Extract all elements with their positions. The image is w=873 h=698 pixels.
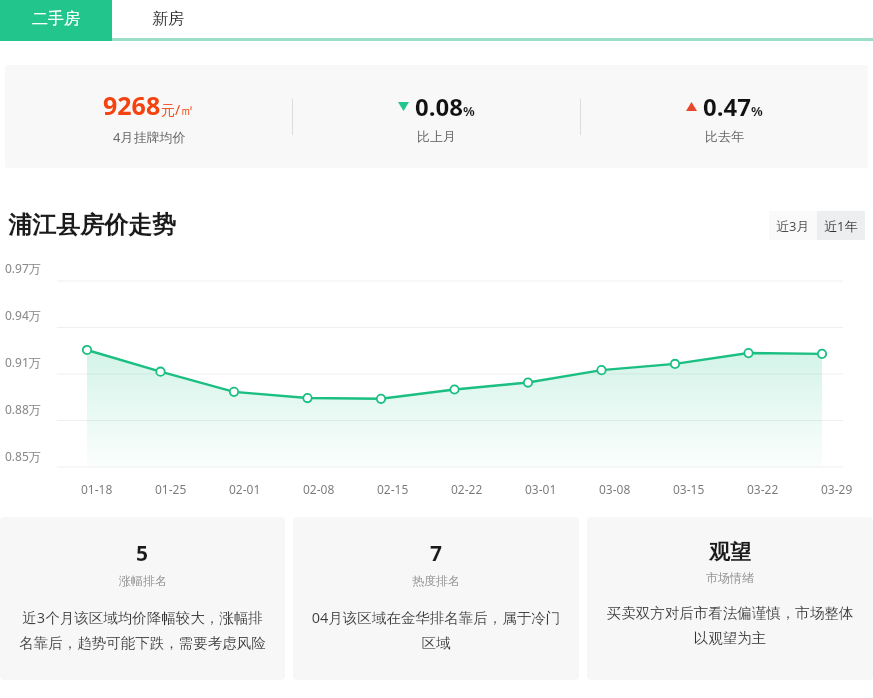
- staticText: 比去年: [705, 128, 744, 144]
- staticText: 0.08: [415, 90, 463, 123]
- staticText: 02-22: [451, 481, 483, 497]
- staticText: 01-18: [81, 481, 113, 497]
- button[interactable]: 观望: [587, 517, 873, 680]
- staticText: 03-08: [599, 481, 631, 497]
- staticText: 9268: [103, 88, 161, 122]
- staticText: %: [463, 102, 475, 120]
- staticText: 02-08: [303, 481, 335, 497]
- staticText: 热度排名: [412, 573, 460, 588]
- staticText: 观望: [709, 539, 751, 565]
- staticText: 浦江县房价走势: [8, 210, 176, 240]
- button[interactable]: 二手房: [0, 0, 112, 38]
- staticText: 0.94万: [5, 307, 41, 323]
- staticText: 0.97万: [5, 260, 41, 276]
- staticText: 04月该区域在金华排名靠后，属于冷门区域: [309, 607, 563, 652]
- staticText: 0.85万: [5, 448, 41, 464]
- staticText: 买卖双方对后市看法偏谨慎，市场整体以观望为主: [603, 604, 857, 647]
- staticText: 市场情绪: [706, 570, 754, 585]
- staticText: 二手房: [32, 9, 80, 29]
- staticText: 02-15: [377, 481, 409, 497]
- staticText: 新房: [152, 9, 184, 29]
- staticText: 03-15: [673, 481, 705, 497]
- staticText: 涨幅排名: [119, 573, 167, 588]
- staticText: 近3月: [776, 217, 810, 235]
- staticText: 01-25: [155, 481, 187, 497]
- staticText: %: [751, 102, 763, 120]
- staticText: 元/㎡: [161, 100, 195, 119]
- button[interactable]: 5: [0, 517, 285, 680]
- button[interactable]: 近3月: [769, 211, 817, 240]
- button[interactable]: 近1年: [817, 211, 865, 240]
- staticText: 4月挂牌均价: [113, 128, 186, 146]
- staticText: 0.88万: [5, 401, 41, 417]
- staticText: 近1年: [824, 217, 858, 235]
- staticText: 5: [136, 539, 149, 568]
- staticText: 近3个月该区域均价降幅较大，涨幅排名靠后，趋势可能下跌，需要考虑风险: [16, 607, 269, 652]
- staticText: 比上月: [417, 128, 456, 144]
- staticText: 03-22: [747, 481, 779, 497]
- staticText: 0.91万: [5, 354, 41, 370]
- staticText: 03-29: [821, 481, 853, 497]
- staticText: 02-01: [229, 481, 261, 497]
- staticText: 03-01: [525, 481, 557, 497]
- staticText: 7: [430, 539, 443, 568]
- button[interactable]: 7: [293, 517, 579, 680]
- button[interactable]: 新房: [112, 0, 224, 38]
- staticText: 0.47: [703, 90, 751, 123]
